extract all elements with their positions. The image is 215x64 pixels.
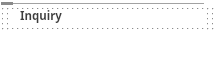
staticText: Inquiry [20,8,62,24]
